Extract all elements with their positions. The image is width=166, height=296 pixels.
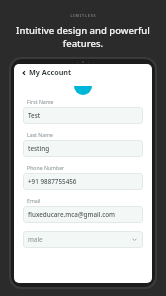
staticText: testing (28, 144, 138, 153)
staticText: Phone Number (27, 164, 65, 171)
staticText: male (28, 235, 131, 244)
button[interactable]: fluxeducare.mca@gmail.com (23, 206, 143, 223)
staticText: +91 9887755456 (28, 177, 138, 186)
button[interactable]: male (23, 231, 143, 248)
button[interactable]: +91 9887755456 (23, 173, 143, 190)
staticText: L I M I T L E S S (70, 13, 96, 18)
staticText: Intuitive design and powerful features. (0, 24, 166, 50)
button[interactable]: testing (23, 140, 143, 157)
staticText: Test (28, 111, 138, 120)
staticText: My Account (29, 67, 72, 77)
button[interactable]: Test (23, 107, 143, 124)
button[interactable]: Back (19, 68, 28, 77)
staticText: Last Name (27, 131, 53, 138)
staticText: Email (27, 197, 41, 204)
staticText: First Name (27, 98, 54, 105)
staticText: fluxeducare.mca@gmail.com (28, 210, 138, 219)
